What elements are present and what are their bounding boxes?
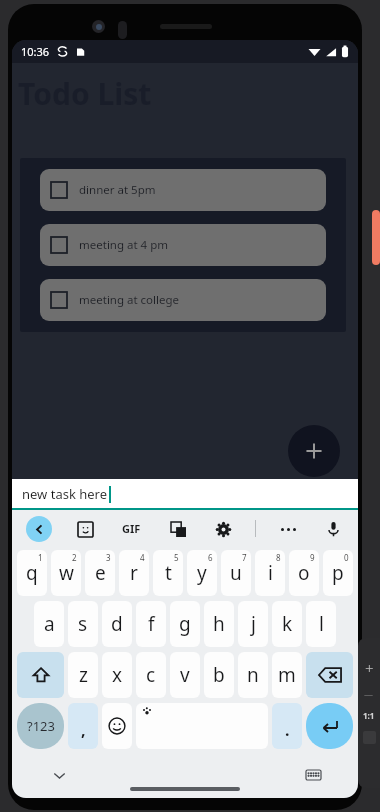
staticText: b [213, 662, 225, 688]
button[interactable]: Translate [165, 516, 191, 542]
button[interactable]: Back [26, 516, 52, 542]
staticText: k [282, 611, 293, 637]
staticText: u [230, 560, 242, 586]
button[interactable]: z [68, 652, 98, 698]
button[interactable]: j [238, 601, 268, 647]
button[interactable]: m [272, 652, 302, 698]
button[interactable]: meeting at college [40, 279, 326, 321]
staticText: l [319, 611, 324, 637]
staticText: q [26, 560, 38, 586]
staticText: 2 [72, 552, 77, 563]
staticText: w [59, 560, 74, 586]
staticText: m [278, 662, 296, 688]
staticText: e [95, 560, 106, 586]
staticText: . [285, 719, 290, 741]
staticText: 7 [242, 552, 247, 563]
button[interactable]: t [153, 550, 183, 596]
button[interactable]: g [170, 601, 200, 647]
staticText: 1:1 [363, 710, 375, 721]
button[interactable]: dinner at 5pm [40, 169, 326, 211]
staticText: a [44, 611, 55, 637]
button[interactable]: Settings [210, 516, 236, 542]
staticText: 0 [344, 552, 349, 563]
button[interactable]: u [221, 550, 251, 596]
button[interactable]: p [323, 550, 353, 596]
staticText: — [364, 688, 374, 700]
button[interactable]: d [102, 601, 132, 647]
staticText: dinner at 5pm [79, 182, 156, 198]
staticText: v [180, 662, 190, 688]
staticText: f [148, 611, 155, 637]
button[interactable]: a [34, 601, 64, 647]
button[interactable]: o [289, 550, 319, 596]
staticText: d [111, 611, 123, 637]
button[interactable]: x [102, 652, 132, 698]
staticText: 1 [38, 552, 43, 563]
button[interactable]: Backspace [306, 652, 353, 698]
button[interactable]: Stickers [72, 516, 98, 542]
button[interactable]: w [51, 550, 81, 596]
staticText: 4 [140, 552, 145, 563]
button[interactable]: Change keyboard [300, 762, 326, 788]
button[interactable]: ?123 [17, 703, 64, 749]
staticText: , [81, 719, 86, 741]
button[interactable]: Add task [288, 425, 340, 477]
button[interactable]: y [187, 550, 217, 596]
button[interactable]: v [170, 652, 200, 698]
staticText: 10:36 [21, 44, 50, 59]
staticText: n [247, 662, 259, 688]
button[interactable]: . [272, 703, 302, 749]
button[interactable]: e [85, 550, 115, 596]
button[interactable]: Enter [306, 703, 353, 749]
staticText: p [332, 560, 344, 586]
staticText: 5 [174, 552, 179, 563]
button[interactable]: s [68, 601, 98, 647]
staticText: x [112, 662, 123, 688]
staticText: Todo List [18, 73, 152, 114]
staticText: 3 [106, 552, 111, 563]
button[interactable]: h [204, 601, 234, 647]
staticText: c [146, 662, 156, 688]
staticText: y [197, 560, 207, 586]
button[interactable]: b [204, 652, 234, 698]
staticText: 6 [208, 552, 213, 563]
staticText: j [251, 611, 256, 637]
staticText: r [130, 560, 138, 586]
button[interactable]: q [17, 550, 47, 596]
staticText: z [79, 662, 88, 688]
staticText: + [365, 658, 374, 678]
staticText: h [213, 611, 225, 637]
staticText: GIF [122, 521, 141, 536]
staticText: g [179, 611, 191, 637]
button[interactable]: l [306, 601, 336, 647]
button[interactable]: r [119, 550, 149, 596]
button[interactable]: Emoji [102, 703, 132, 749]
button[interactable]: More options [275, 516, 301, 542]
staticText: new task here [22, 485, 108, 503]
staticText: i [268, 560, 273, 586]
staticText: s [78, 611, 88, 637]
button[interactable]: k [272, 601, 302, 647]
staticText: o [298, 560, 310, 586]
staticText: t [165, 560, 172, 586]
staticText: meeting at college [79, 292, 180, 308]
button[interactable]: Voice input [320, 516, 346, 542]
button[interactable]: Space [136, 703, 268, 749]
staticText: 9 [310, 552, 315, 563]
button[interactable]: , [68, 703, 98, 749]
button[interactable]: f [136, 601, 166, 647]
staticText: ?123 [27, 717, 55, 735]
button[interactable]: n [238, 652, 268, 698]
button[interactable]: i [255, 550, 285, 596]
button[interactable]: c [136, 652, 166, 698]
button[interactable]: GIF [118, 517, 145, 540]
button[interactable]: meeting at 4 pm [40, 224, 326, 266]
button[interactable]: Hide keyboard [46, 762, 72, 788]
staticText: 8 [276, 552, 281, 563]
button[interactable]: Shift [17, 652, 64, 698]
staticText: meeting at 4 pm [79, 237, 168, 253]
